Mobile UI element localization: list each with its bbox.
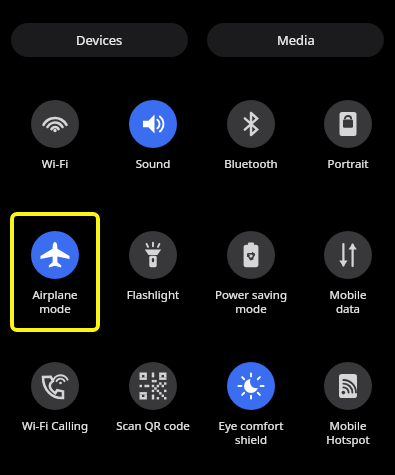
button[interactable]: Mobile Hotspot xyxy=(303,343,393,463)
staticText: Portrait xyxy=(303,156,393,172)
staticText: Bluetooth xyxy=(206,156,296,172)
staticText: Eye comfort shield xyxy=(206,418,296,447)
button[interactable]: Mobile data xyxy=(303,212,393,332)
button[interactable]: Scan QR code xyxy=(108,343,198,463)
button[interactable]: Airplane mode xyxy=(10,212,100,332)
staticText: Devices xyxy=(76,31,123,49)
button[interactable]: Wi-Fi xyxy=(10,81,100,201)
staticText: Mobile data xyxy=(303,287,393,316)
button[interactable]: Media xyxy=(207,23,384,57)
button[interactable]: Eye comfort shield xyxy=(206,343,296,463)
staticText: Flashlight xyxy=(108,287,198,303)
staticText: Wi-Fi xyxy=(10,156,100,172)
button[interactable]: Portrait xyxy=(303,81,393,201)
staticText: Sound xyxy=(108,156,198,172)
button[interactable]: Devices xyxy=(11,23,188,57)
button[interactable]: Flashlight xyxy=(108,212,198,332)
staticText: Mobile Hotspot xyxy=(303,418,393,447)
staticText: Wi-Fi Calling xyxy=(10,418,100,434)
staticText: Airplane mode xyxy=(10,287,100,316)
staticText: Scan QR code xyxy=(108,418,198,434)
staticText: Power saving mode xyxy=(206,287,296,316)
button[interactable]: Bluetooth xyxy=(206,81,296,201)
button[interactable]: Wi-Fi Calling xyxy=(10,343,100,463)
button[interactable]: Power saving mode xyxy=(206,212,296,332)
staticText: Media xyxy=(277,31,315,49)
button[interactable]: Sound xyxy=(108,81,198,201)
